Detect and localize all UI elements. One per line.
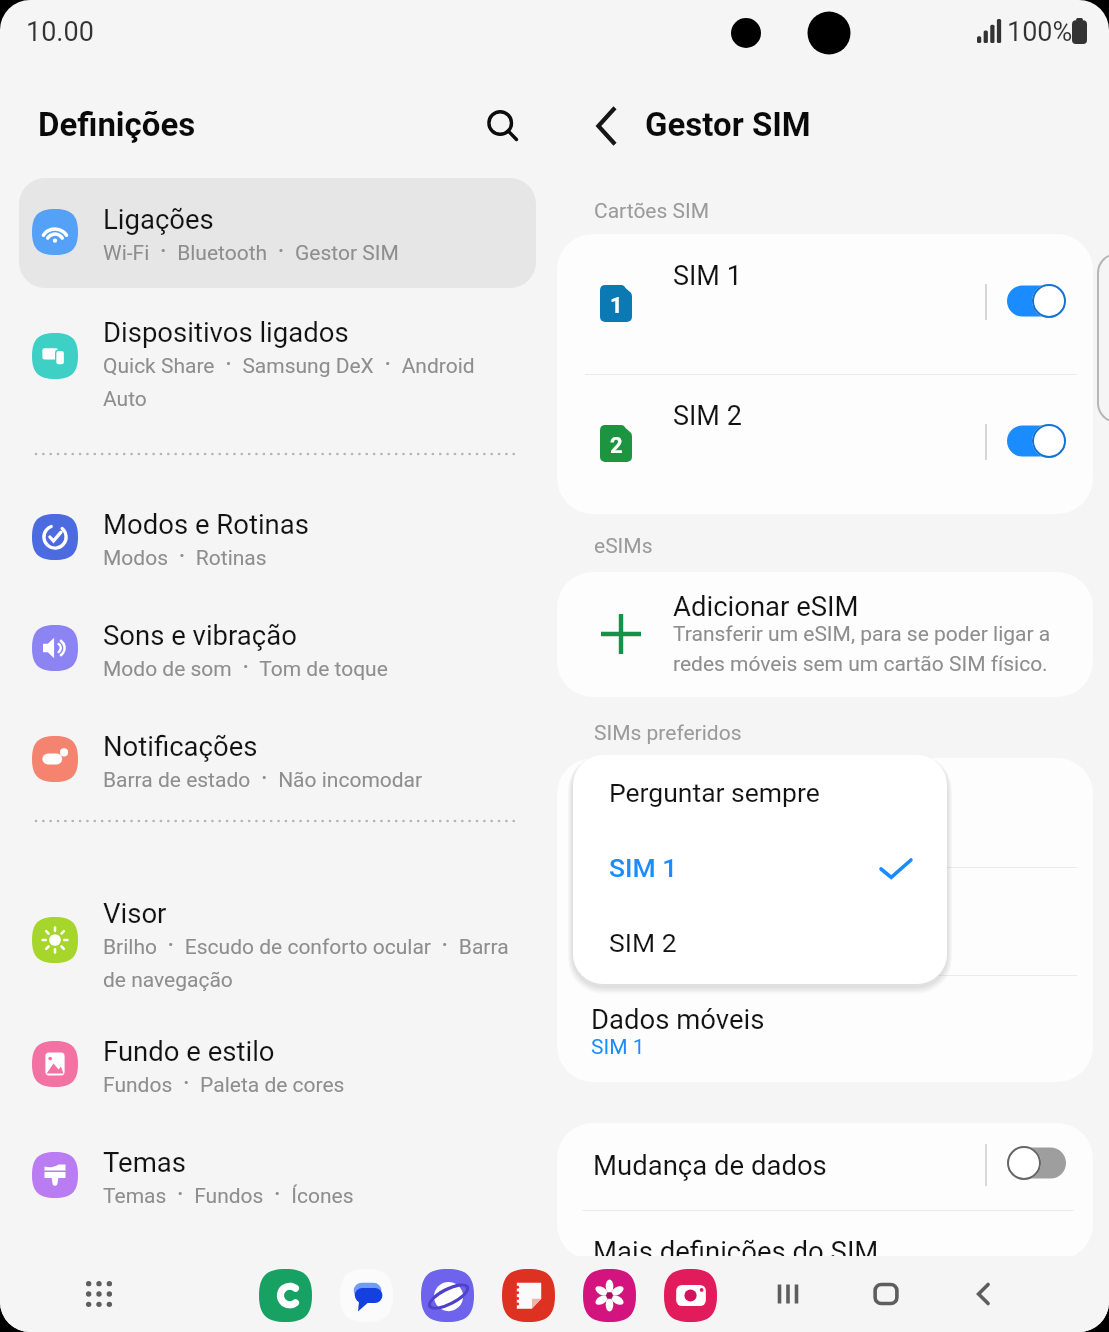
staticText: Temas	[103, 1146, 186, 1178]
staticText: Transferir um eSIM, para se poder ligar …	[673, 622, 1058, 676]
button[interactable]: notes	[502, 1269, 555, 1322]
staticText: Notificações	[103, 730, 258, 762]
staticText: Sons e vibração	[103, 619, 297, 651]
button[interactable]	[573, 905, 947, 982]
staticText: Modos e Rotinas	[103, 508, 309, 540]
button[interactable]: Ligado	[1007, 283, 1069, 319]
button[interactable]	[557, 240, 1093, 368]
button[interactable]: camera	[664, 1269, 717, 1322]
staticText: Wi-Fi · Bluetooth · Gestor SIM	[103, 235, 399, 267]
button[interactable]: Ligado	[1007, 423, 1069, 459]
button[interactable]: Voltar	[958, 1268, 1010, 1320]
staticText: Brilho · Escudo de conforto ocular · Bar…	[103, 929, 519, 992]
button[interactable]: phone	[259, 1269, 312, 1322]
staticText: 1	[610, 293, 623, 319]
staticText: SIM 1	[591, 1035, 645, 1060]
staticText: Definições	[38, 105, 196, 144]
button[interactable]: gallery	[583, 1269, 636, 1322]
staticText: Fundos · Paleta de cores	[103, 1067, 345, 1099]
staticText: Chamadas	[591, 786, 723, 818]
staticText: Adicionar eSIM	[673, 590, 859, 622]
staticText: Mais definições do SIM	[593, 1235, 879, 1260]
button[interactable]: msg	[340, 1269, 393, 1322]
button[interactable]: Início	[860, 1268, 912, 1320]
button[interactable]	[557, 1123, 1093, 1209]
button[interactable]	[19, 178, 536, 288]
staticText: Quick Share · Samsung DeX · Android Auto	[103, 348, 519, 411]
staticText: Fundo e estilo	[103, 1035, 275, 1067]
button[interactable]	[557, 572, 1093, 697]
staticText: eSIMs	[594, 534, 653, 559]
staticText: Dispositivos ligados	[103, 316, 349, 348]
button[interactable]	[557, 758, 1093, 866]
staticText: SIM 2	[609, 927, 677, 958]
button[interactable]: Recentes	[762, 1268, 814, 1320]
button[interactable]: Back	[579, 99, 633, 153]
staticText: Barra de estado · Não incomodar	[103, 762, 423, 794]
staticText: SIMs preferidos	[594, 721, 742, 746]
staticText: Cartões SIM	[594, 199, 710, 224]
staticText: Mudança de dados	[593, 1149, 827, 1181]
staticText: Perguntar sempre	[609, 777, 820, 808]
button[interactable]: internet	[421, 1269, 474, 1322]
staticText: Ligações	[103, 203, 214, 235]
button[interactable]	[573, 830, 947, 907]
button[interactable]	[557, 975, 1093, 1082]
staticText: Temas · Fundos · Ícones	[103, 1178, 354, 1210]
button[interactable]: Procurar	[473, 96, 529, 152]
staticText: Modos · Rotinas	[103, 540, 267, 572]
button[interactable]	[557, 380, 1093, 508]
staticText: 2	[610, 433, 623, 459]
staticText: SIM 2	[673, 400, 742, 432]
staticText: SIM 1	[673, 260, 742, 292]
button[interactable]: Aplicações	[73, 1268, 125, 1320]
staticText: Visor	[103, 897, 167, 929]
button[interactable]: Desligado	[1007, 1145, 1069, 1181]
staticText: Dados móveis	[591, 1003, 765, 1035]
staticText: SIM 1	[609, 852, 678, 883]
staticText: SIM 1	[591, 927, 645, 952]
staticText: 10.00	[26, 16, 94, 48]
button[interactable]	[573, 755, 947, 832]
staticText: Modo de som · Tom de toque	[103, 651, 388, 683]
staticText: 100%	[1007, 16, 1073, 48]
staticText: Gestor SIM	[645, 105, 811, 144]
button[interactable]	[557, 867, 1093, 975]
